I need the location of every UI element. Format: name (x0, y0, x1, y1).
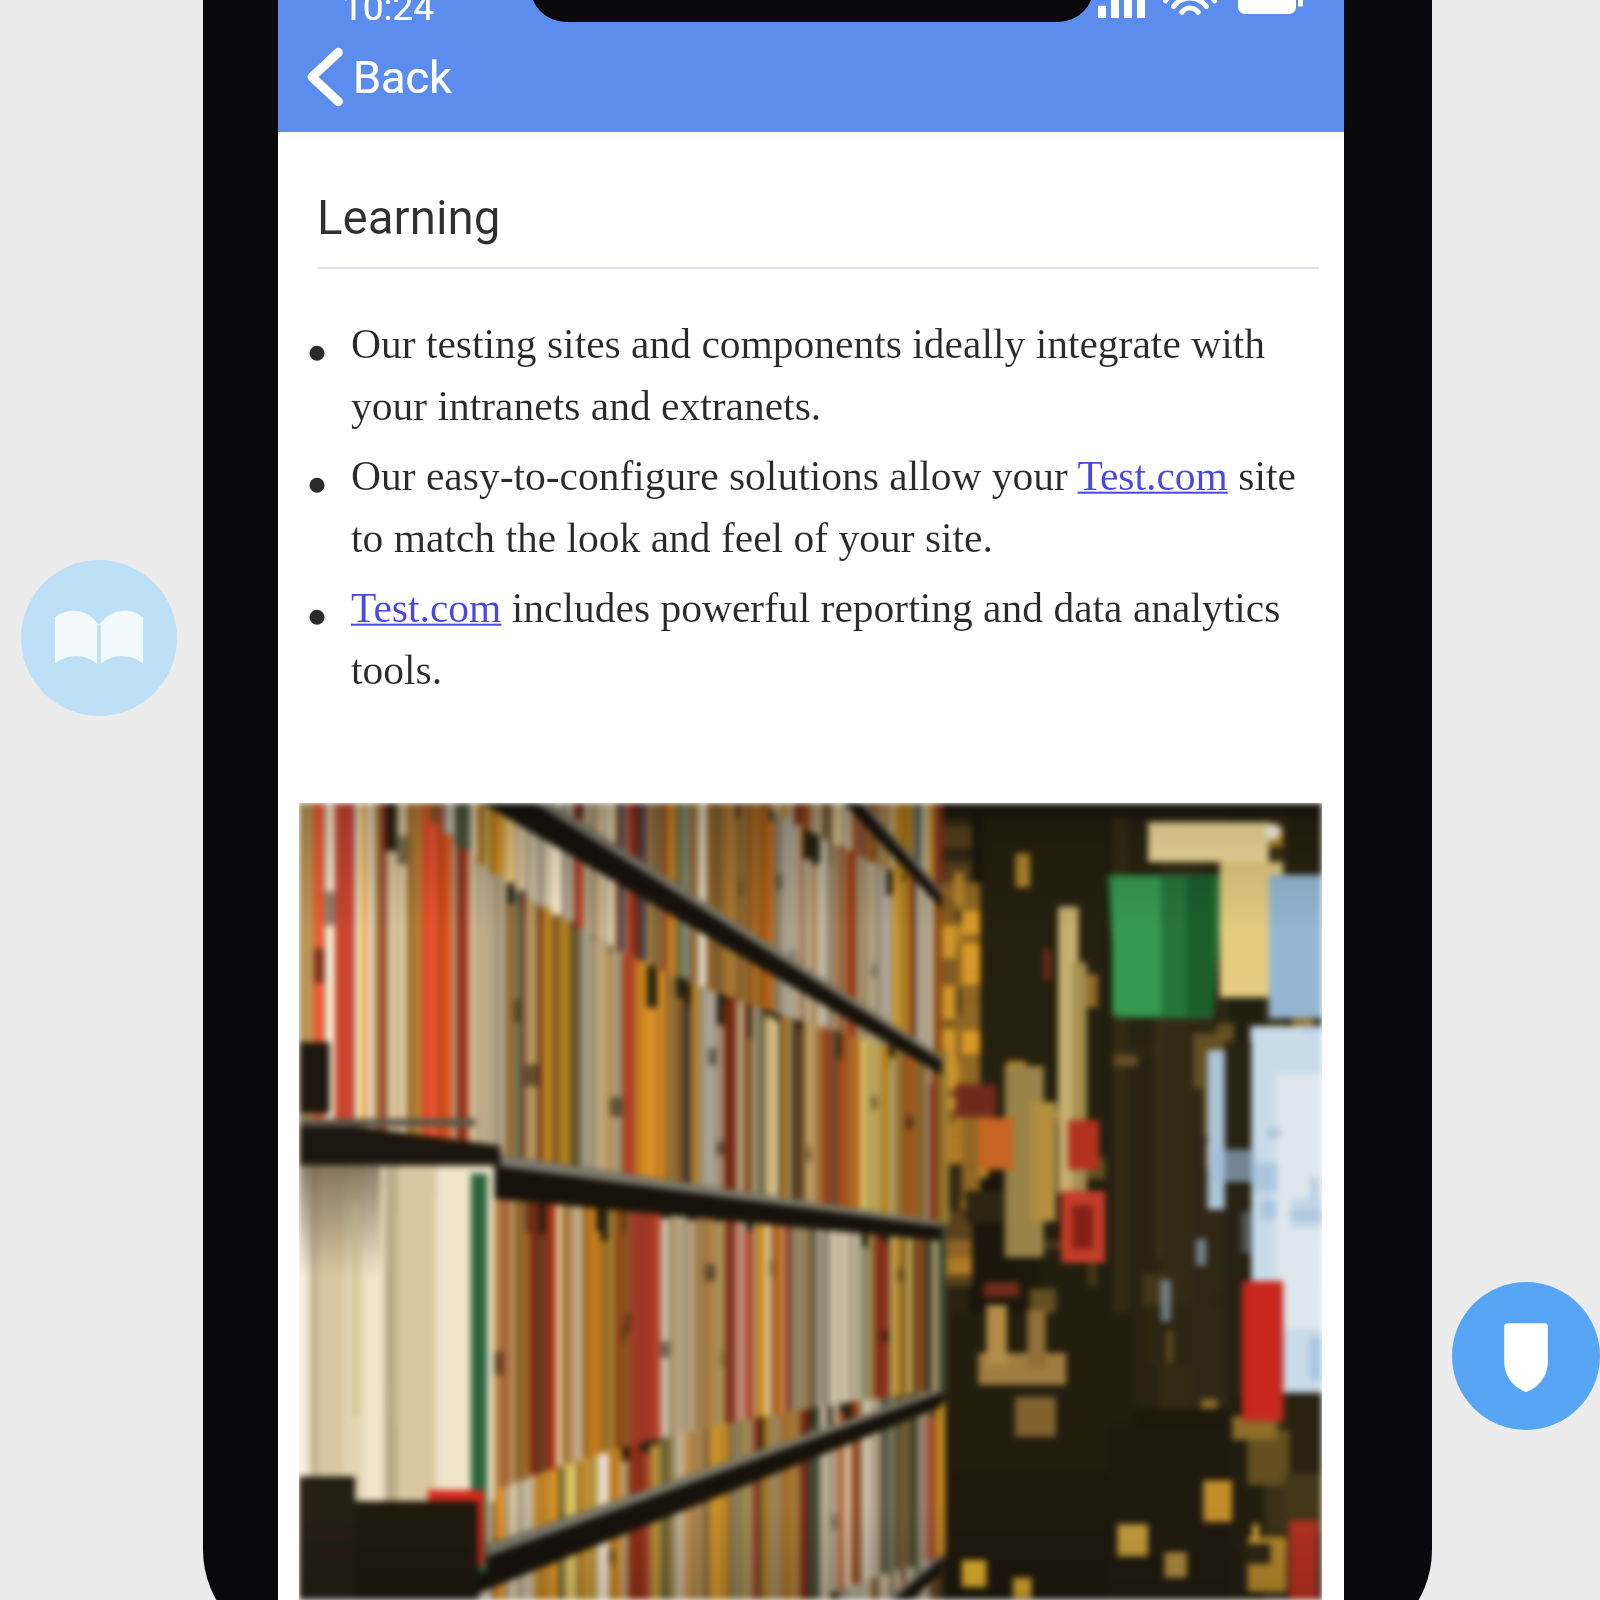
staticText: Test.com includes powerful reporting and… (351, 585, 1299, 693)
button[interactable]: Security (1452, 1282, 1600, 1430)
button[interactable]: Back (308, 48, 452, 106)
staticText: Learning (317, 190, 501, 246)
staticText: Our testing sites and components ideally… (351, 321, 1299, 429)
staticText: Our easy-to-configure solutions allow yo… (351, 453, 1299, 561)
staticText: Back (353, 51, 452, 104)
staticText: 10:24 (342, 0, 435, 29)
button[interactable]: Learning (21, 560, 177, 716)
button[interactable]: Bookshelf photo (299, 803, 1322, 1600)
